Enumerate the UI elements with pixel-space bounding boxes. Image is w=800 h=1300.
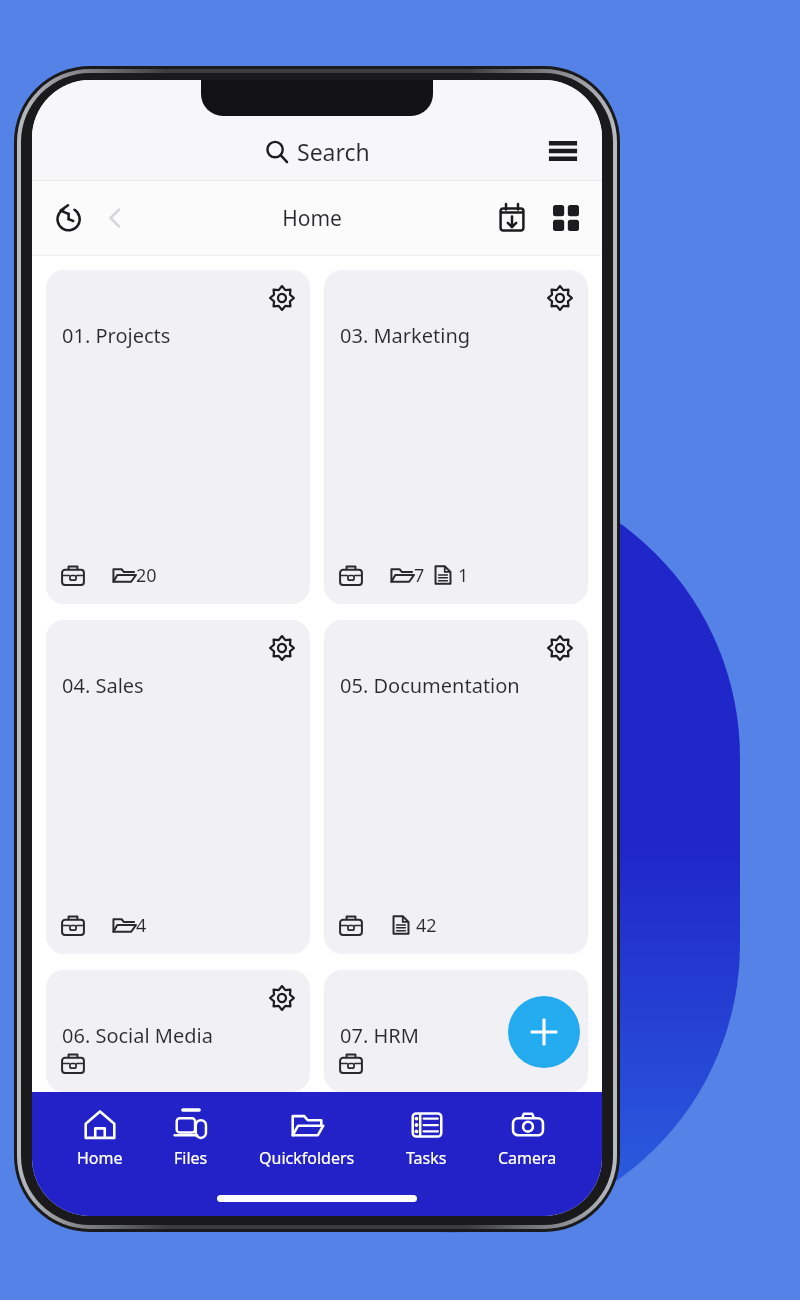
button[interactable]: Settings bbox=[324, 620, 588, 954]
staticText: 05. Documentation bbox=[340, 672, 520, 699]
staticText: 1 bbox=[458, 563, 469, 588]
button[interactable]: Files bbox=[168, 1106, 214, 1171]
button[interactable]: Home bbox=[71, 1106, 129, 1171]
button[interactable]: Settings bbox=[262, 628, 302, 668]
staticText: Search bbox=[297, 136, 370, 167]
staticText: 04. Sales bbox=[62, 672, 144, 699]
staticText: 7 bbox=[414, 563, 425, 588]
button[interactable]: Search bbox=[259, 132, 376, 171]
staticText: 06. Social Media bbox=[62, 1022, 213, 1049]
button[interactable]: Add bbox=[508, 996, 580, 1068]
button[interactable]: 07. HRM bbox=[324, 970, 588, 1092]
button[interactable]: Settings bbox=[324, 270, 588, 604]
staticText: 07. HRM bbox=[340, 1022, 419, 1049]
button[interactable]: Settings bbox=[262, 978, 302, 1018]
button[interactable]: Grid view bbox=[544, 196, 588, 240]
button[interactable]: Camera bbox=[492, 1106, 563, 1171]
staticText: 42 bbox=[416, 913, 437, 938]
button[interactable]: Settings bbox=[46, 270, 310, 604]
staticText: Quickfolders bbox=[259, 1147, 355, 1169]
staticText: 4 bbox=[136, 913, 147, 938]
button[interactable]: Settings bbox=[46, 970, 310, 1092]
button[interactable]: History bbox=[46, 196, 90, 240]
button[interactable]: Settings bbox=[262, 278, 302, 318]
staticText: Camera bbox=[498, 1147, 557, 1169]
button[interactable]: Quickfolders bbox=[253, 1106, 361, 1171]
button[interactable]: Settings bbox=[46, 620, 310, 954]
staticText: Home bbox=[282, 204, 342, 233]
staticText: 03. Marketing bbox=[340, 322, 471, 349]
button[interactable]: Settings bbox=[540, 278, 580, 318]
button[interactable]: Menu bbox=[540, 128, 586, 174]
staticText: 20 bbox=[136, 563, 157, 588]
button[interactable]: Settings bbox=[540, 628, 580, 668]
staticText: Home bbox=[77, 1147, 123, 1169]
button[interactable]: Back bbox=[96, 199, 134, 237]
staticText: Tasks bbox=[406, 1147, 447, 1169]
staticText: Files bbox=[174, 1147, 208, 1169]
button[interactable]: Tasks bbox=[400, 1106, 453, 1171]
staticText: 01. Projects bbox=[62, 322, 171, 349]
button[interactable]: Calendar download bbox=[490, 196, 534, 240]
